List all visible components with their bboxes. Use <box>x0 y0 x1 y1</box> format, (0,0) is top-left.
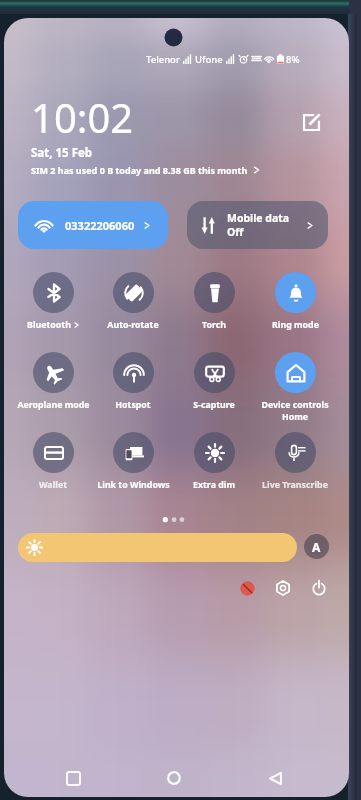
staticText: Extra dim <box>193 479 235 491</box>
staticText: Live Transcribe <box>262 479 328 491</box>
button[interactable]: Power <box>307 576 331 600</box>
staticText: Wallet <box>39 479 67 491</box>
staticText: Off <box>227 225 244 239</box>
button[interactable]: Brightness <box>18 533 297 562</box>
button[interactable]: Back <box>255 758 295 797</box>
button[interactable]: 03322206060 <box>18 201 168 249</box>
staticText: Ufone <box>195 53 223 66</box>
staticText: Hotspot <box>115 399 151 411</box>
staticText: Link to Windows <box>97 479 170 491</box>
button[interactable]: Settings <box>271 576 295 600</box>
button[interactable] <box>13 432 93 490</box>
staticText: A <box>312 539 321 555</box>
staticText: Auto-rotate <box>107 319 159 331</box>
staticText: 8% <box>286 53 300 66</box>
staticText: Mobile data <box>227 211 290 225</box>
staticText: Bluetooth <box>27 319 71 331</box>
button[interactable]: Recents <box>53 758 93 797</box>
button[interactable] <box>93 432 173 490</box>
button[interactable] <box>255 352 335 410</box>
button[interactable] <box>174 272 254 330</box>
button[interactable] <box>255 432 335 490</box>
button[interactable] <box>13 352 93 410</box>
button[interactable]: A <box>304 534 329 559</box>
staticText: Sat, 15 Feb <box>31 145 93 161</box>
button[interactable] <box>13 272 93 330</box>
button[interactable] <box>93 272 173 330</box>
staticText: Ring mode <box>272 319 319 331</box>
button[interactable]: Mobile data <box>187 201 328 249</box>
staticText: Device controls Home <box>261 399 329 422</box>
staticText: SIM 2 has used 0 B today and 8.38 GB thi… <box>31 164 248 176</box>
staticText: S-capture <box>193 399 235 411</box>
staticText: 03322206060 <box>65 218 135 233</box>
button[interactable]: Data saver <box>235 576 259 600</box>
button[interactable]: Home <box>154 758 194 797</box>
button[interactable] <box>255 272 335 330</box>
button[interactable] <box>93 352 173 410</box>
button[interactable] <box>174 432 254 490</box>
staticText: Telenor <box>146 53 180 66</box>
staticText: Torch <box>202 319 226 331</box>
button[interactable] <box>174 352 254 410</box>
button[interactable]: Edit quick settings <box>297 108 325 136</box>
staticText: Aeroplane mode <box>17 399 90 411</box>
staticText: 10:02 <box>31 90 134 144</box>
